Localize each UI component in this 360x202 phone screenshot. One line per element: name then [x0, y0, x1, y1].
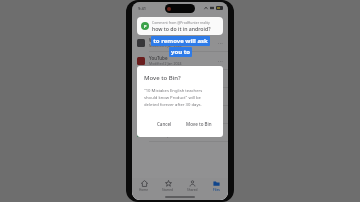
staticText: 9:41: [138, 6, 146, 11]
staticText: you to: [171, 48, 190, 56]
staticText: to remove will ask: [153, 37, 208, 45]
staticText: ⋯: [218, 130, 223, 136]
staticText: ⋯: [218, 40, 223, 46]
button[interactable]: Move to Bin: [182, 119, 216, 129]
staticText: Move to Bin: [186, 121, 212, 127]
staticText: Content 2023-10-14_2024-01-12 C…: [149, 91, 215, 97]
button[interactable]: Starred: [156, 178, 180, 194]
staticText: Modified 2 Jan 2024: [149, 61, 182, 66]
staticText: Starred: [162, 188, 174, 192]
staticText: Some Document: [149, 73, 185, 79]
button[interactable]: Content 2023-10-15_2024-01-13 C…: [132, 106, 228, 123]
staticText: Files: [213, 188, 220, 192]
button[interactable]: Files: [204, 178, 228, 194]
staticText: Move to Bin?: [144, 74, 181, 82]
staticText: Modified 3 Jan 2024: [149, 43, 182, 48]
staticText: ⋯: [218, 58, 223, 64]
button[interactable]: Cancel: [153, 119, 176, 129]
staticText: Modified 5 Jan 2024: [149, 97, 182, 102]
button[interactable]: P: [137, 17, 223, 35]
button[interactable]: Home: [132, 178, 156, 194]
button[interactable]: YouTube: [132, 52, 228, 69]
button[interactable]: Shared: [180, 178, 204, 194]
staticText: Modified 4 Jan 2024: [149, 133, 182, 138]
staticText: Shared: [187, 188, 198, 192]
button[interactable]: Work Temp: [132, 34, 228, 51]
staticText: Cancel: [157, 121, 172, 127]
button[interactable]: Content 2023-10-14_2024-01-12 C…: [132, 88, 228, 105]
staticText: P: [144, 24, 147, 29]
staticText: Modified 8 Jan 2024: [149, 79, 182, 84]
staticText: Comment from @ProdHunter reality: [152, 20, 210, 25]
button[interactable]: Content 2023-10-16_2024-01-14 C…: [132, 124, 228, 141]
staticText: YouTube: [149, 55, 168, 61]
button[interactable]: Some Document: [132, 70, 228, 87]
staticText: Work Temp: [149, 37, 174, 43]
staticText: Home: [139, 188, 149, 192]
staticText: how to do it in android?: [152, 25, 211, 32]
staticText: "10 Mistakes English teachers should kno…: [144, 88, 216, 108]
